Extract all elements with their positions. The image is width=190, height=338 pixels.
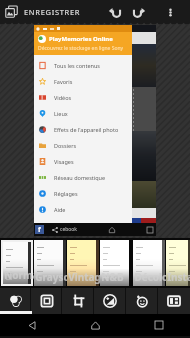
- button[interactable]: Lieux: [34, 105, 132, 121]
- button[interactable]: ENREGISTRER: [0, 0, 89, 24]
- button[interactable]: Décoloré: [133, 240, 165, 286]
- button[interactable]: Dossiers: [34, 137, 132, 153]
- button[interactable]: Frames: [31, 288, 62, 314]
- staticText: Favoris: [54, 78, 73, 85]
- button[interactable]: Filters: [0, 288, 31, 314]
- button[interactable]: Undo: [103, 0, 127, 24]
- button[interactable]: Effets de l'appareil photo: [34, 121, 132, 137]
- button[interactable]: Stickers: [126, 288, 158, 314]
- staticText: Lieux: [54, 110, 68, 117]
- staticText: f: [38, 225, 41, 234]
- staticText: cebook: [60, 226, 78, 233]
- button[interactable]: Recents: [127, 314, 190, 336]
- staticText: Réseau domestique: [54, 174, 106, 181]
- staticText: Normal: [4, 268, 31, 282]
- button[interactable]: Normal: [1, 240, 33, 286]
- button[interactable]: Vidéos: [34, 89, 132, 105]
- button[interactable]: Instant: [166, 240, 190, 286]
- staticText: ENREGISTRER: [24, 7, 81, 17]
- button[interactable]: Crop: [62, 288, 94, 314]
- button[interactable]: Redo: [127, 0, 151, 24]
- button[interactable]: Réseau domestique: [34, 169, 132, 185]
- button[interactable]: Back: [0, 314, 64, 336]
- staticText: Dossiers: [54, 142, 77, 149]
- button[interactable]: Favoris: [34, 73, 132, 89]
- staticText: Aide: [54, 206, 66, 213]
- staticText: N&B: [101, 270, 124, 284]
- button[interactable]: Grayscale: [34, 240, 66, 286]
- button[interactable]: N&B: [100, 240, 132, 286]
- button[interactable]: More options: [151, 0, 190, 24]
- button[interactable]: Home: [64, 314, 127, 336]
- staticText: Grayscale: [35, 270, 66, 284]
- staticText: Décoloré: [134, 270, 165, 284]
- button[interactable]: Visages: [34, 153, 132, 169]
- button[interactable]: Adjust: [94, 288, 126, 314]
- staticText: Réglages: [54, 190, 78, 197]
- staticText: Instant: [167, 270, 190, 284]
- staticText: Vidéos: [54, 94, 72, 101]
- staticText: Visages: [54, 158, 74, 165]
- button[interactable]: Réglages: [34, 185, 132, 201]
- button[interactable]: Collage: [158, 288, 190, 314]
- staticText: Vintage: [68, 270, 99, 284]
- button[interactable]: Tous les contenus: [34, 57, 132, 73]
- button[interactable]: Vintage: [67, 240, 99, 286]
- staticText: Effets de l'appareil photo: [54, 126, 119, 133]
- staticText: Découvrez le stockage en ligne Sony: [38, 45, 124, 52]
- button[interactable]: Aide: [34, 201, 132, 217]
- staticText: Tous les contenus: [54, 62, 100, 69]
- staticText: PlayMemories Online: [49, 35, 113, 43]
